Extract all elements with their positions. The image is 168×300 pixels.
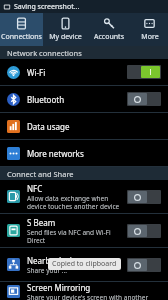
staticText: Wi-Fi xyxy=(27,67,46,78)
staticText: Network connections xyxy=(7,48,82,58)
staticText: More xyxy=(141,32,159,42)
staticText: Connections xyxy=(1,32,42,42)
button[interactable]: My device xyxy=(43,13,87,46)
staticText: Allow data exchange when device touches … xyxy=(27,194,120,211)
button[interactable]: Off xyxy=(127,92,161,106)
button[interactable]: NFC xyxy=(0,180,168,213)
staticText: S Beam xyxy=(27,217,56,228)
staticText: Data usage xyxy=(27,121,70,132)
button[interactable]: Off xyxy=(127,224,161,238)
button[interactable]: Wi-Fi xyxy=(0,59,168,85)
staticText: Connect and Share xyxy=(7,169,74,179)
button[interactable]: Connections xyxy=(0,13,43,46)
button[interactable]: More networks xyxy=(0,140,168,166)
staticText: Accounts xyxy=(94,32,124,42)
button[interactable]: On xyxy=(127,65,161,79)
button[interactable]: Screen Mirroring xyxy=(0,282,168,300)
button[interactable]: Nearby devices xyxy=(0,248,168,281)
button[interactable]: S Beam xyxy=(0,214,168,247)
button[interactable]: Bluetooth xyxy=(0,86,168,112)
staticText: NFC xyxy=(27,183,43,194)
button[interactable]: More xyxy=(131,13,168,46)
button[interactable]: Off xyxy=(127,258,161,272)
button[interactable]: Data usage xyxy=(0,113,168,139)
staticText: My device xyxy=(49,32,82,42)
button[interactable]: Off xyxy=(127,190,161,204)
staticText: Nearby devices xyxy=(27,255,84,266)
staticText: Saving screenshot... xyxy=(14,2,80,12)
staticText: Screen Mirroring xyxy=(27,282,91,293)
button[interactable]: Accounts xyxy=(87,13,131,46)
staticText: Copied to clipboard xyxy=(52,259,117,269)
staticText: Send files via NFC and Wi-Fi Direct xyxy=(27,228,111,245)
staticText: Share your ... xyxy=(27,266,68,275)
staticText: More networks xyxy=(27,148,84,159)
staticText: Bluetooth xyxy=(27,94,65,105)
staticText: Share your device's screen with another … xyxy=(27,293,149,300)
